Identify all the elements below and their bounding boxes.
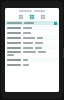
button[interactable]	[5, 45, 59, 50]
button[interactable]: List view	[18, 14, 24, 20]
button[interactable]	[5, 35, 59, 40]
button[interactable]	[5, 57, 59, 62]
button[interactable]	[5, 62, 59, 67]
button[interactable]	[5, 40, 59, 45]
button[interactable]	[5, 50, 59, 57]
button[interactable]: Chart view	[40, 14, 46, 20]
button[interactable]	[5, 25, 59, 30]
button[interactable]: Sort	[5, 21, 59, 25]
button[interactable]: Grid view	[29, 14, 35, 20]
button[interactable]	[5, 30, 59, 35]
